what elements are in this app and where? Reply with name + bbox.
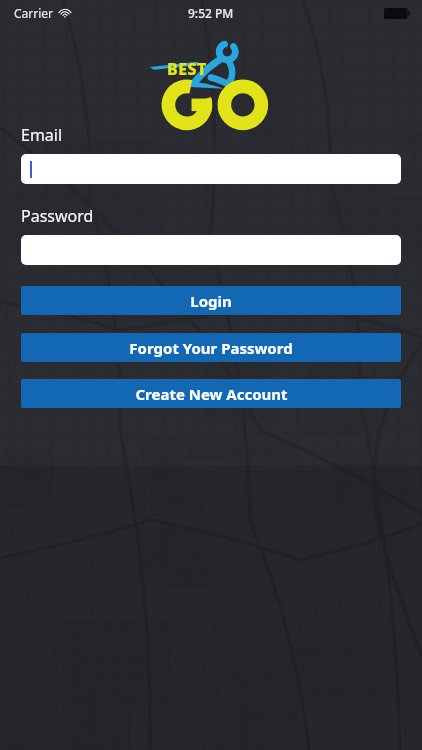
staticText: Password	[21, 205, 94, 227]
staticText: 9:52 PM	[188, 5, 234, 21]
button[interactable]: Forgot Your Password	[21, 333, 401, 362]
button[interactable]: Login	[21, 286, 401, 315]
staticText: Email	[21, 124, 63, 146]
button[interactable]: Password input	[21, 235, 401, 265]
staticText: Login	[190, 291, 232, 311]
button[interactable]: Email input	[21, 154, 401, 184]
staticText: Forgot Your Password	[129, 338, 293, 358]
staticText: Carrier	[14, 5, 54, 21]
button[interactable]: Create New Account	[21, 379, 401, 408]
staticText: BEST	[167, 58, 207, 80]
staticText: Create New Account	[135, 384, 288, 404]
